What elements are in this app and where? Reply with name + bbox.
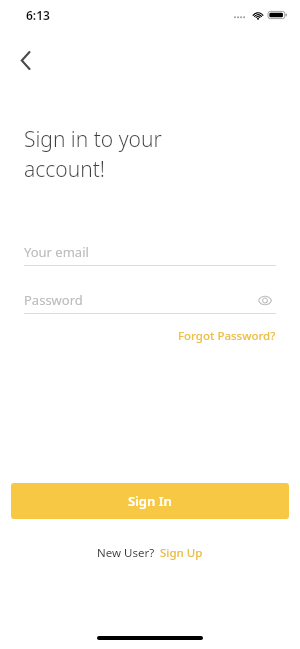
staticText: Sign Up: [160, 545, 203, 561]
button[interactable]: Sign Up: [160, 545, 203, 561]
staticText: Sign In: [128, 492, 172, 510]
staticText: Forgot Password?: [178, 328, 276, 344]
staticText: Your email: [24, 243, 89, 261]
staticText: New User?: [97, 545, 155, 561]
staticText: 6:13: [26, 7, 50, 23]
button[interactable]: Sign In: [11, 483, 289, 519]
button[interactable]: Back: [6, 40, 46, 80]
button[interactable]: Forgot Password?: [178, 326, 276, 346]
button[interactable]: Your email: [24, 239, 276, 266]
button[interactable]: Password: [24, 287, 276, 314]
button[interactable]: Show password: [254, 289, 276, 311]
staticText: Password: [24, 291, 254, 309]
staticText: Sign in to your account!: [24, 125, 162, 183]
